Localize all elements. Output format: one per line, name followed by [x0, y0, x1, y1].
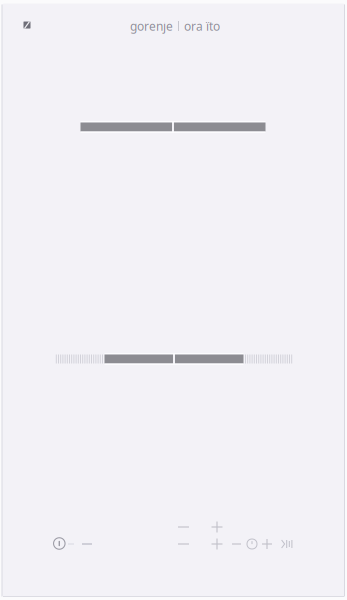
- button[interactable]: Increase rear zone: [208, 518, 225, 535]
- button[interactable]: Pause: [79, 537, 95, 551]
- button[interactable]: Power: [53, 538, 65, 549]
- button[interactable]: Brand mark: [19, 17, 35, 33]
- button[interactable]: Decrease timer: [229, 536, 244, 551]
- button[interactable]: Timer: [244, 536, 260, 552]
- button[interactable]: Rear cooking zone: [80, 121, 265, 133]
- button[interactable]: Decrease front zone: [175, 535, 192, 552]
- staticText: ora ïto: [184, 18, 220, 34]
- button[interactable]: Increase front zone: [208, 535, 225, 552]
- staticText: gorenje: [130, 18, 173, 34]
- button[interactable]: Increase timer: [259, 536, 275, 552]
- button[interactable]: Front cooking zone: [56, 353, 292, 365]
- button[interactable]: Decrease rear zone: [175, 518, 192, 535]
- button[interactable]: Child lock: [65, 537, 77, 551]
- button[interactable]: Bridge zones: [279, 537, 295, 551]
